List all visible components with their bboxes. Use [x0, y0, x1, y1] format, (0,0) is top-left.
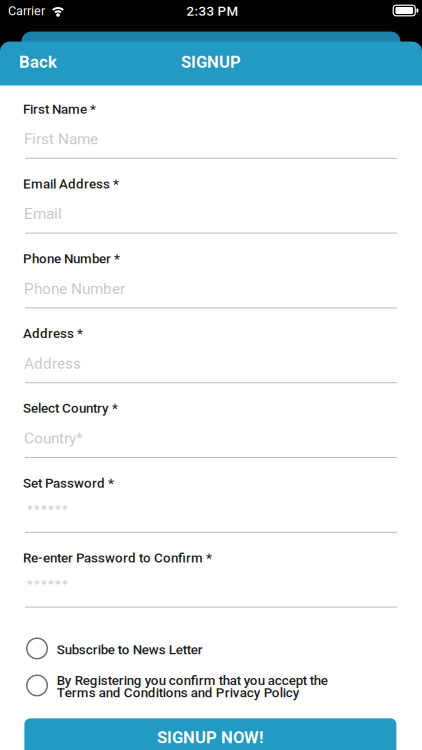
button[interactable]: SIGNUP NOW!	[24, 718, 396, 750]
staticText: Terms and Conditions and Privacy Policy	[57, 685, 300, 701]
staticText: Back	[19, 52, 57, 72]
button[interactable]: Back	[7, 46, 69, 78]
staticText: Re-enter Password to Confirm *	[23, 550, 212, 566]
staticText: First Name *	[23, 101, 96, 117]
staticText: ∗∗∗∗∗∗	[26, 502, 68, 512]
staticText: Email	[24, 205, 62, 223]
staticText: Subscribe to News Letter	[57, 642, 203, 657]
staticText: Phone Number	[24, 280, 125, 298]
staticText: ∗∗∗∗∗∗	[26, 577, 68, 587]
staticText: Email Address *	[23, 176, 119, 192]
staticText: First Name	[24, 130, 98, 148]
staticText: Address	[24, 354, 81, 372]
staticText: 2:33 PM	[186, 3, 238, 19]
staticText: Carrier	[8, 3, 45, 18]
staticText: Address *	[23, 326, 83, 341]
staticText: Phone Number *	[23, 251, 120, 266]
staticText: SIGNUP	[181, 52, 241, 72]
button[interactable]: By Registering you confirm that you acce…	[0, 0, 422, 750]
staticText: By Registering you confirm that you acce…	[57, 673, 328, 688]
staticText: Select Country *	[23, 400, 118, 416]
staticText: Country*	[24, 429, 83, 447]
staticText: Set Password *	[23, 475, 114, 491]
button[interactable]: Subscribe to News Letter	[0, 0, 422, 750]
staticText: SIGNUP NOW!	[157, 728, 264, 747]
